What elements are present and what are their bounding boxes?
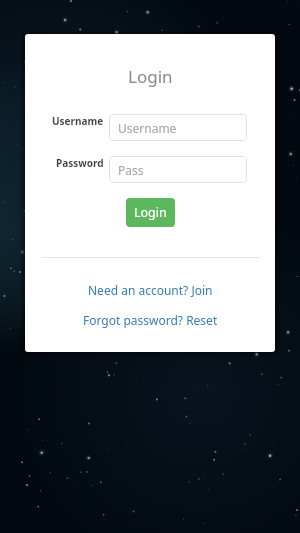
staticText: Need an account? Join	[88, 282, 213, 298]
staticText: Login	[134, 204, 167, 221]
button[interactable]: Forgot password? Reset	[25, 312, 275, 328]
staticText: Pass	[118, 162, 144, 178]
staticText: Username	[118, 120, 177, 136]
button[interactable]: Pass	[109, 156, 247, 183]
button[interactable]: Need an account? Join	[25, 282, 275, 298]
staticText: Password	[56, 156, 104, 170]
staticText: Login	[128, 65, 173, 88]
button[interactable]: Login	[126, 198, 175, 227]
staticText: Username	[52, 114, 104, 128]
staticText: Forgot password? Reset	[83, 312, 218, 328]
button[interactable]: Username	[109, 114, 247, 141]
